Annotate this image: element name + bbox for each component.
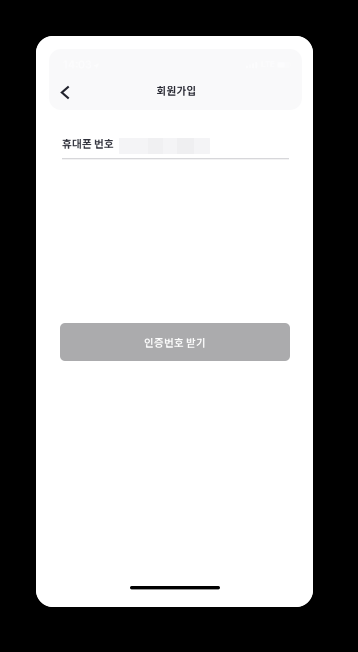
staticText: 인증번호 받기 [144,334,206,350]
button[interactable]: Back [60,77,86,107]
staticText: 회원가입 [156,82,196,98]
button[interactable]: 인증번호 받기 [60,323,290,361]
staticText: 휴대폰 번호 [62,135,114,151]
